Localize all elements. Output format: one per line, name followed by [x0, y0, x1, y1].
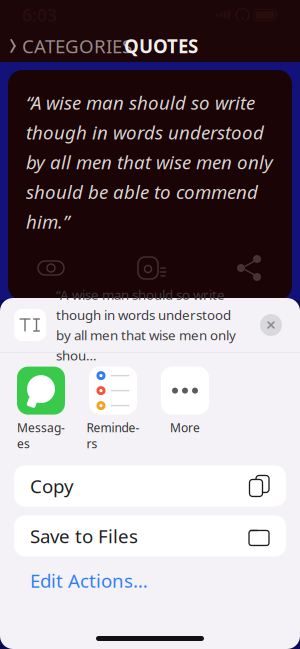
button[interactable]: Show details	[16, 248, 86, 288]
button[interactable]: Share	[214, 248, 284, 288]
staticText: 6:03	[22, 3, 57, 26]
staticText: “A wise man should so write though in wo…	[56, 286, 236, 364]
button[interactable]: Messages	[14, 367, 68, 451]
staticText: Copy	[30, 474, 74, 498]
staticText: “A wise man should so write though in wo…	[26, 90, 273, 234]
button[interactable]: Reminders	[86, 367, 140, 451]
button[interactable]: Speak quote	[115, 248, 185, 288]
staticText: Messages	[17, 420, 65, 451]
staticText: QUOTES	[124, 34, 198, 58]
staticText: Reminders	[86, 420, 139, 451]
button[interactable]: CATEGORIES	[8, 28, 132, 64]
button[interactable]: Close	[256, 310, 286, 340]
staticText: CATEGORIES	[22, 34, 132, 58]
staticText: More	[170, 420, 200, 435]
staticText: Edit Actions…	[30, 568, 148, 593]
button[interactable]: More	[158, 367, 212, 435]
staticText: Save to Files	[30, 524, 138, 548]
button[interactable]: Save to Files	[14, 515, 286, 556]
button[interactable]: Edit Actions…	[14, 565, 286, 595]
button[interactable]: Copy	[14, 465, 286, 506]
